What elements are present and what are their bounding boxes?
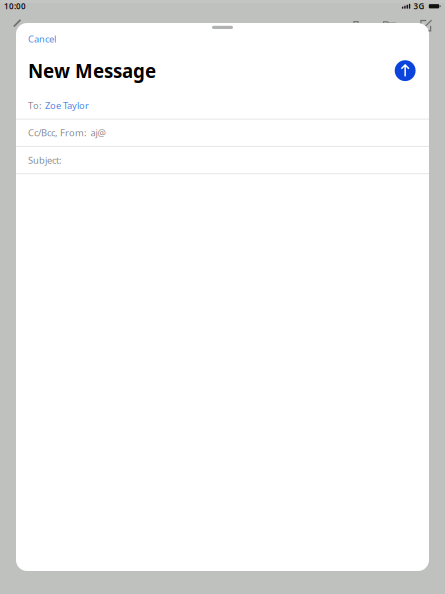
button[interactable]: Send [395,60,416,81]
button[interactable]: To: [16,92,429,120]
button[interactable]: Cancel [16,29,429,49]
staticText: New Message [28,58,156,83]
staticText: Zoe Taylor [45,99,89,112]
button[interactable]: Cc/Bcc, From: [16,120,429,147]
staticText: 10:00 [4,1,26,11]
button[interactable]: Subject: [16,147,429,174]
staticText: Subject: [28,154,62,166]
staticText: Cc/Bcc, From: [28,127,87,139]
staticText: Cancel [28,33,56,45]
staticText: 3G [414,1,425,11]
staticText: aj@ [90,127,105,139]
staticText: To: [28,99,42,112]
